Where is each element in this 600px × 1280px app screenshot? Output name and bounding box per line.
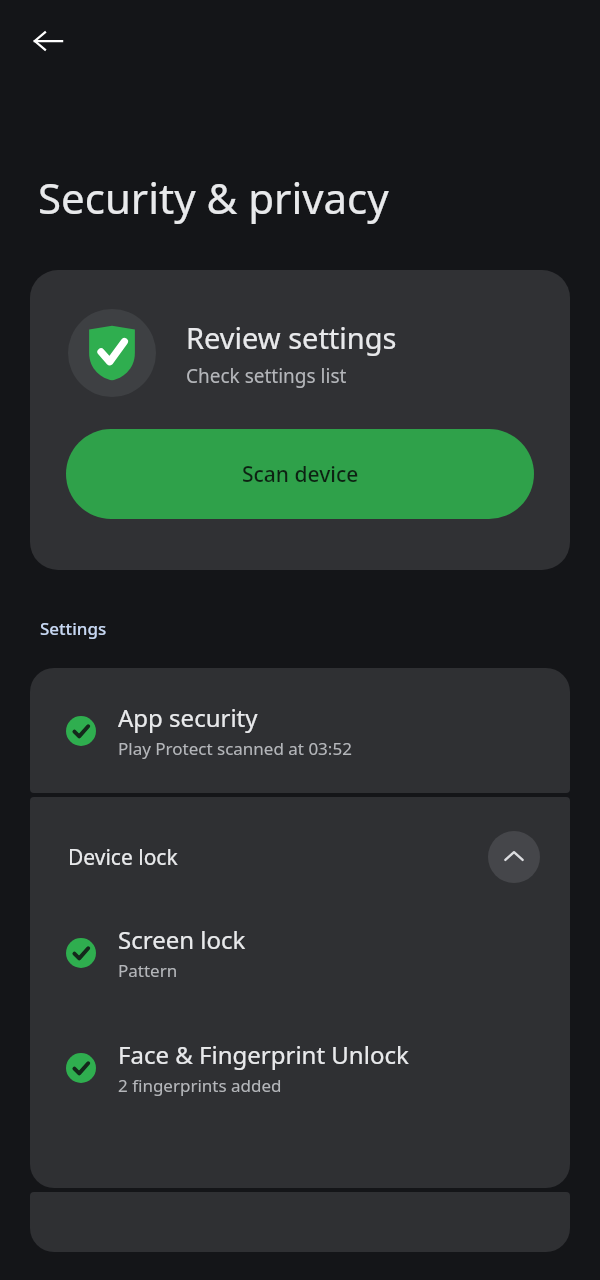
staticText: App security [118,701,258,734]
staticText: Scan device [242,460,359,489]
staticText: Device lock [68,843,178,872]
button[interactable]: Scan device [66,429,534,519]
staticText: Screen lock [118,923,246,956]
staticText: Settings [40,617,107,640]
button[interactable]: App security [30,687,570,774]
staticText: Play Protect scanned at 03:52 [118,737,352,760]
button[interactable]: Back [21,14,75,68]
staticText: 2 fingerprints added [118,1074,282,1097]
staticText: Review settings [186,318,397,357]
staticText: Check settings list [186,363,347,389]
button[interactable]: Device lock [30,797,570,883]
staticText: Pattern [118,959,178,982]
button[interactable]: Collapse Device lock [488,831,540,883]
button[interactable]: Face & Fingerprint Unlock [30,1024,570,1111]
button[interactable]: Review settings [30,270,570,397]
staticText: Face & Fingerprint Unlock [118,1038,409,1071]
button[interactable]: Screen lock [30,909,570,996]
staticText: Security & privacy [38,169,389,226]
